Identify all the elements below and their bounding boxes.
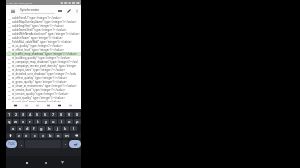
button[interactable]: Undo bbox=[10, 102, 21, 109]
button[interactable]: d bbox=[24, 126, 30, 131]
staticText: o bbox=[68, 119, 71, 124]
button[interactable]: j bbox=[54, 126, 61, 131]
staticText: z bbox=[18, 133, 20, 138]
staticText: , bbox=[21, 142, 22, 146]
button[interactable]: 1 bbox=[6, 112, 12, 117]
button[interactable]: Navigation menu bbox=[9, 5, 17, 16]
staticText: 30 bbox=[8, 89, 11, 92]
staticText: FoldsMsL_cableWall" type='integer'/></va… bbox=[12, 40, 72, 44]
button[interactable]: Find bbox=[32, 102, 43, 109]
button[interactable]: f bbox=[31, 126, 37, 131]
staticText: d bbox=[26, 126, 29, 131]
staticText: p bbox=[76, 119, 79, 124]
staticText: st_ss_quality" type='integer'/></value> bbox=[12, 44, 63, 48]
staticText: 16 bbox=[8, 33, 11, 36]
staticText: y bbox=[45, 119, 47, 124]
staticText: st_show_ai_movements" type='integer'/></… bbox=[12, 84, 77, 88]
button[interactable]: Period bbox=[62, 140, 68, 148]
button[interactable]: 4 bbox=[27, 112, 33, 117]
button[interactable]: z bbox=[16, 133, 22, 138]
staticText: st_effect_level" type='integer'/></value… bbox=[12, 48, 65, 52]
staticText: h bbox=[48, 126, 51, 131]
button[interactable]: y bbox=[42, 119, 49, 124]
staticText: st_effect_quality" type='integer'/></val… bbox=[12, 76, 68, 80]
button[interactable]: 6 bbox=[42, 112, 49, 117]
staticText: 26 bbox=[8, 73, 11, 76]
button[interactable]: Redo bbox=[21, 102, 32, 109]
staticText: 7 bbox=[52, 112, 55, 117]
staticText: ?123 bbox=[8, 142, 15, 146]
button[interactable]: Back bbox=[57, 157, 68, 168]
button[interactable]: k bbox=[62, 126, 69, 131]
staticText: st_unit_size" type='integer'/></value> bbox=[12, 100, 61, 102]
staticText: k bbox=[64, 126, 67, 131]
button[interactable]: ?123 bbox=[6, 140, 17, 148]
staticText: 21 bbox=[8, 53, 11, 56]
staticText: 3 bbox=[22, 112, 25, 117]
button[interactable]: t bbox=[34, 119, 41, 124]
button[interactable]: s bbox=[17, 126, 23, 131]
button[interactable]: 5 bbox=[34, 112, 41, 117]
button[interactable]: b bbox=[47, 133, 54, 138]
button[interactable]: Home bbox=[40, 157, 51, 168]
staticText: t bbox=[37, 119, 39, 124]
staticText: 17 bbox=[8, 37, 11, 40]
button[interactable]: More options bbox=[73, 5, 81, 16]
button[interactable]: Search bbox=[43, 102, 54, 109]
button[interactable]: a bbox=[10, 126, 16, 131]
staticText: st_despic_anisi" type='integer'/></value… bbox=[12, 68, 66, 72]
staticText: 20 bbox=[8, 49, 11, 52]
button[interactable]: 3 bbox=[20, 112, 26, 117]
staticText: cableinTsiam" type='integer'/></value> bbox=[12, 36, 63, 40]
button[interactable]: r bbox=[27, 119, 33, 124]
button[interactable]: p bbox=[74, 119, 81, 124]
button[interactable]: w bbox=[13, 119, 19, 124]
button[interactable]: x bbox=[23, 133, 30, 138]
button[interactable]: Comma bbox=[18, 140, 24, 148]
button[interactable]: m bbox=[63, 133, 70, 138]
staticText: r bbox=[29, 119, 31, 124]
button[interactable]: 7 bbox=[50, 112, 57, 117]
button[interactable]: c bbox=[31, 133, 38, 138]
staticText: 9 bbox=[68, 112, 71, 117]
button[interactable]: u bbox=[50, 119, 57, 124]
button[interactable]: Save bbox=[54, 102, 65, 109]
button[interactable]: 8 bbox=[58, 112, 65, 117]
button[interactable]: o bbox=[66, 119, 73, 124]
button[interactable]: i bbox=[58, 119, 65, 124]
staticText: b bbox=[49, 133, 52, 138]
staticText: 31 bbox=[8, 93, 11, 96]
staticText: st_campaign_map_shadows" type='integer'/… bbox=[12, 60, 78, 64]
staticText: . bbox=[65, 142, 66, 146]
button[interactable]: 9 bbox=[66, 112, 73, 117]
button[interactable]: v bbox=[39, 133, 46, 138]
staticText: 23 bbox=[8, 61, 11, 64]
button[interactable]: e bbox=[20, 119, 26, 124]
button[interactable]: 0 bbox=[74, 112, 81, 117]
staticText: n bbox=[57, 133, 60, 138]
staticText: 8 bbox=[60, 112, 63, 117]
button[interactable]: q bbox=[6, 119, 12, 124]
button[interactable]: Menu bbox=[65, 102, 76, 109]
button[interactable]: Save bbox=[55, 5, 64, 16]
button[interactable]: 2 bbox=[13, 112, 19, 117]
staticText: cableImgShot" type='integer'/></value> bbox=[12, 24, 65, 28]
staticText: 19 bbox=[8, 45, 11, 48]
staticText: g bbox=[40, 126, 43, 131]
button[interactable]: Enter bbox=[69, 140, 81, 148]
button[interactable]: h bbox=[46, 126, 53, 131]
staticText: i bbox=[61, 119, 63, 124]
button[interactable]: Edit bbox=[64, 5, 73, 16]
staticText: st_terrain_quality" type='integer'/></va… bbox=[12, 92, 69, 96]
button[interactable]: n bbox=[55, 133, 62, 138]
button[interactable]: l bbox=[70, 126, 77, 131]
button[interactable]: g bbox=[38, 126, 45, 131]
button[interactable]: Shift bbox=[6, 133, 15, 138]
button[interactable]: Recent apps bbox=[21, 157, 32, 168]
staticText: j bbox=[57, 126, 59, 131]
button[interactable]: Backspace bbox=[71, 133, 81, 138]
staticText: /storage/emulated/0/prefs.xml bbox=[20, 11, 55, 14]
staticText: 12 bbox=[8, 17, 11, 20]
